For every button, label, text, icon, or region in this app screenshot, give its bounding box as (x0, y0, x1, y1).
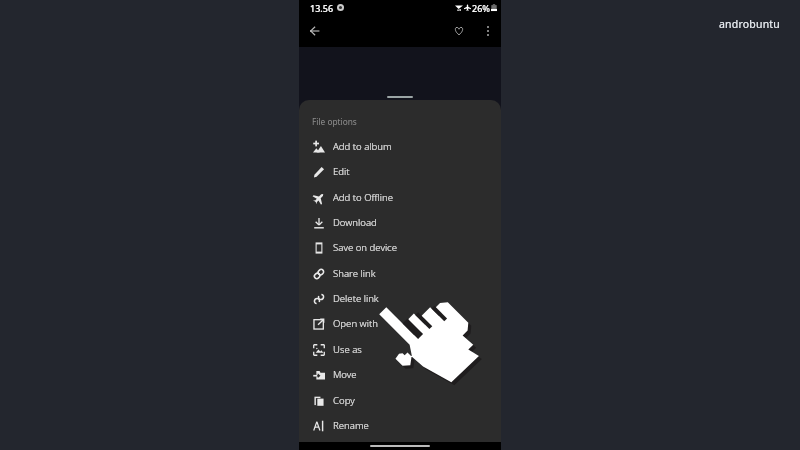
staticText: Share link (333, 267, 376, 280)
staticText: Delete link (333, 292, 379, 305)
button[interactable]: Open with (299, 311, 501, 336)
button[interactable]: Download (299, 210, 501, 235)
button[interactable]: Save on device (299, 235, 501, 260)
button[interactable]: Copy (299, 388, 501, 413)
staticText: Download (333, 216, 377, 229)
staticText: 13.56 (310, 2, 334, 14)
staticText: Move (333, 368, 357, 381)
staticText: Save on device (333, 241, 397, 254)
staticText: Use as (333, 343, 362, 356)
button[interactable]: Rename (299, 413, 501, 438)
staticText: Edit (333, 165, 350, 178)
staticText: Rename (333, 419, 369, 432)
staticText: Copy (333, 394, 355, 407)
button[interactable]: Favorite (448, 20, 470, 42)
button[interactable]: Add to album (299, 134, 501, 159)
staticText: Add to album (333, 140, 392, 153)
button[interactable]: Delete link (299, 286, 501, 311)
staticText: androbuntu (719, 17, 781, 31)
staticText: File options (312, 116, 357, 127)
button[interactable]: Share link (299, 261, 501, 286)
button[interactable]: Add to Offline (299, 185, 501, 210)
button[interactable]: Edit (299, 159, 501, 184)
staticText: Open with (333, 317, 378, 330)
button[interactable]: Back (303, 20, 325, 42)
staticText: Add to Offline (333, 191, 393, 204)
staticText: 26% (472, 2, 490, 14)
button[interactable]: More options (477, 20, 499, 42)
button[interactable]: Move (299, 362, 501, 387)
button[interactable]: Use as (299, 337, 501, 362)
